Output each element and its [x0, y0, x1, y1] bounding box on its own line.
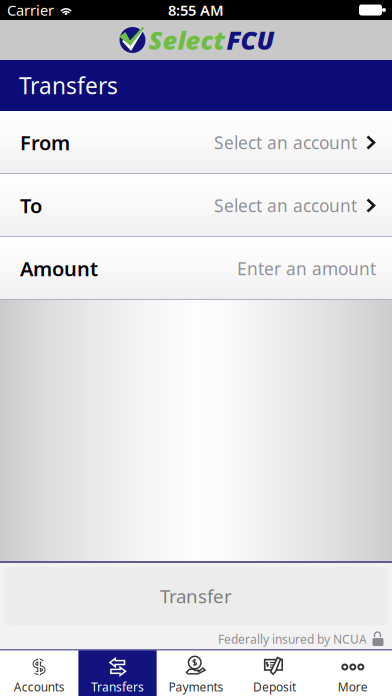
button[interactable]: More	[314, 649, 392, 696]
staticText: Select an account	[214, 131, 357, 154]
staticText: Transfer	[160, 584, 232, 608]
button[interactable]: To	[0, 174, 392, 237]
staticText: From	[20, 129, 70, 156]
staticText: Amount	[20, 255, 98, 282]
button[interactable]: Deposit	[235, 649, 314, 696]
staticText: Deposit	[253, 679, 296, 695]
staticText: Federally insured by NCUA	[218, 631, 367, 647]
staticText: Enter an amount	[237, 257, 376, 280]
button[interactable]: From	[0, 111, 392, 174]
staticText: Accounts	[14, 679, 65, 695]
staticText: Select an account	[214, 194, 357, 217]
staticText: To	[20, 192, 42, 219]
staticText: Payments	[168, 679, 223, 695]
staticText: More	[338, 679, 368, 695]
staticText: 8:55 AM	[168, 0, 224, 20]
button[interactable]: Transfer	[0, 563, 392, 625]
button[interactable]: Amount	[0, 237, 392, 300]
staticText: Transfers	[91, 679, 144, 695]
button[interactable]: Transfers	[78, 649, 157, 696]
staticText: FCU	[226, 23, 274, 57]
button[interactable]: Payments	[157, 649, 235, 696]
staticText: Transfers	[19, 70, 118, 100]
staticText: Carrier	[7, 0, 54, 20]
staticText: Select	[148, 23, 225, 57]
button[interactable]: Accounts	[0, 649, 78, 696]
